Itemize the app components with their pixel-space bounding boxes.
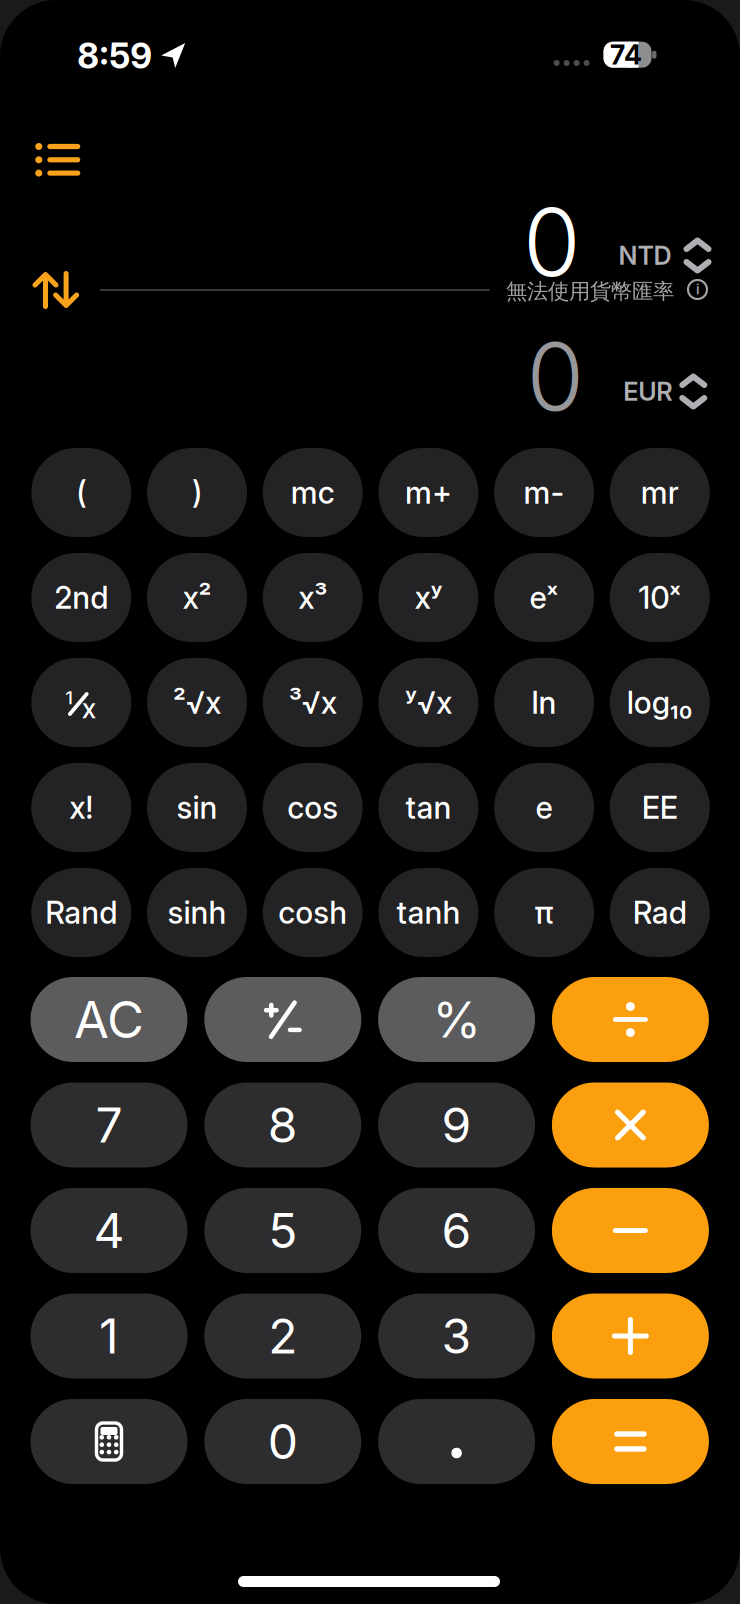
button[interactable]: Rand	[31, 868, 131, 957]
button[interactable]: cos	[263, 763, 363, 852]
button[interactable]: Exchange-rate info	[686, 278, 708, 300]
button[interactable]: ln	[494, 658, 594, 747]
staticText: %	[433, 990, 481, 1049]
staticText: x	[82, 693, 97, 724]
staticText: tanh	[396, 894, 460, 931]
button[interactable]: ʸ√x	[378, 658, 478, 747]
staticText: 0	[523, 187, 581, 297]
button[interactable]: cosh	[263, 868, 363, 957]
staticText: 5	[268, 1202, 297, 1259]
staticText: )	[192, 474, 202, 511]
staticText: 8:59	[77, 36, 152, 76]
staticText: 1	[99, 1308, 119, 1364]
button[interactable]: 3	[378, 1293, 535, 1378]
staticText: ln	[532, 684, 557, 721]
button[interactable]: %	[378, 977, 535, 1062]
staticText: e	[536, 789, 553, 826]
staticText: (	[76, 474, 86, 511]
staticText: x³	[298, 579, 327, 616]
button[interactable]: m+	[378, 448, 478, 537]
staticText: eˣ	[530, 579, 559, 616]
staticText: π	[535, 894, 554, 931]
button[interactable]: 1	[31, 658, 131, 747]
button[interactable]: 7	[30, 1082, 187, 1167]
button[interactable]: (	[31, 448, 131, 537]
button[interactable]: Multiply	[552, 1082, 709, 1167]
button[interactable]: Divide	[552, 977, 709, 1062]
button[interactable]: x²	[147, 553, 247, 642]
button[interactable]	[378, 1399, 535, 1484]
button[interactable]: 9	[378, 1082, 535, 1167]
button[interactable]	[204, 977, 361, 1062]
button[interactable]: Equals	[552, 1399, 709, 1484]
staticText: 8	[268, 1097, 298, 1153]
staticText: cos	[287, 789, 338, 826]
button[interactable]: 6	[378, 1188, 535, 1273]
button[interactable]: eˣ	[494, 553, 594, 642]
staticText: mc	[291, 474, 335, 511]
staticText: 1	[65, 686, 73, 708]
button[interactable]: Basic calculator	[30, 1399, 187, 1484]
staticText: 3	[442, 1308, 472, 1364]
button[interactable]: EE	[610, 763, 710, 852]
staticText: 2nd	[54, 579, 108, 616]
button[interactable]: xʸ	[378, 553, 478, 642]
staticText: 無法使用貨幣匯率	[506, 278, 674, 305]
staticText: Rand	[45, 894, 117, 931]
button[interactable]: Swap currencies	[34, 273, 77, 306]
button[interactable]: Add	[552, 1293, 709, 1378]
staticText: cosh	[278, 894, 347, 931]
staticText: mr	[641, 474, 679, 511]
staticText: m-	[524, 474, 565, 511]
staticText: x!	[69, 789, 93, 826]
button[interactable]: ³√x	[263, 658, 363, 747]
staticText: ³√x	[289, 684, 337, 721]
staticText: xʸ	[414, 579, 442, 616]
button[interactable]: 0	[204, 1399, 361, 1484]
button[interactable]: Choose calculator type	[35, 142, 81, 177]
staticText: log₁₀	[627, 684, 693, 721]
staticText: AC	[74, 990, 144, 1049]
button[interactable]: )	[147, 448, 247, 537]
staticText: 0	[268, 1413, 298, 1470]
staticText: m+	[405, 474, 452, 511]
staticText: NTD	[618, 241, 671, 270]
staticText: 10ˣ	[638, 579, 681, 616]
button[interactable]: x!	[31, 763, 131, 852]
button[interactable]: Rad	[610, 868, 710, 957]
button[interactable]: Select first currency	[618, 240, 708, 270]
button[interactable]: x³	[263, 553, 363, 642]
button[interactable]: m-	[494, 448, 594, 537]
button[interactable]: mr	[610, 448, 710, 537]
button[interactable]: Subtract	[552, 1188, 709, 1273]
button[interactable]: sin	[147, 763, 247, 852]
button[interactable]: tanh	[378, 868, 478, 957]
staticText: 2	[268, 1308, 297, 1364]
staticText: 74	[610, 39, 642, 70]
staticText: 6	[442, 1202, 472, 1259]
staticText: ʸ√x	[405, 684, 452, 721]
button[interactable]: 5	[204, 1188, 361, 1273]
button[interactable]: e	[494, 763, 594, 852]
staticText: i	[696, 282, 699, 297]
button[interactable]: 2nd	[31, 553, 131, 642]
staticText: 7	[95, 1097, 122, 1153]
button[interactable]: ²√x	[147, 658, 247, 747]
button[interactable]: mc	[263, 448, 363, 537]
button[interactable]: π	[494, 868, 594, 957]
button[interactable]: 8	[204, 1082, 361, 1167]
button[interactable]: log₁₀	[610, 658, 710, 747]
button[interactable]: 4	[30, 1188, 187, 1273]
button[interactable]: AC	[30, 977, 187, 1062]
button[interactable]: 10ˣ	[610, 553, 710, 642]
staticText: 9	[442, 1097, 472, 1153]
staticText: tan	[405, 789, 451, 826]
staticText: EE	[642, 789, 678, 826]
button[interactable]: 1	[30, 1293, 187, 1378]
staticText: Rad	[633, 894, 687, 931]
button[interactable]: sinh	[147, 868, 247, 957]
staticText: EUR	[623, 377, 672, 406]
button[interactable]: tan	[378, 763, 478, 852]
button[interactable]: 2	[204, 1293, 361, 1378]
button[interactable]: Select second currency	[623, 376, 704, 406]
